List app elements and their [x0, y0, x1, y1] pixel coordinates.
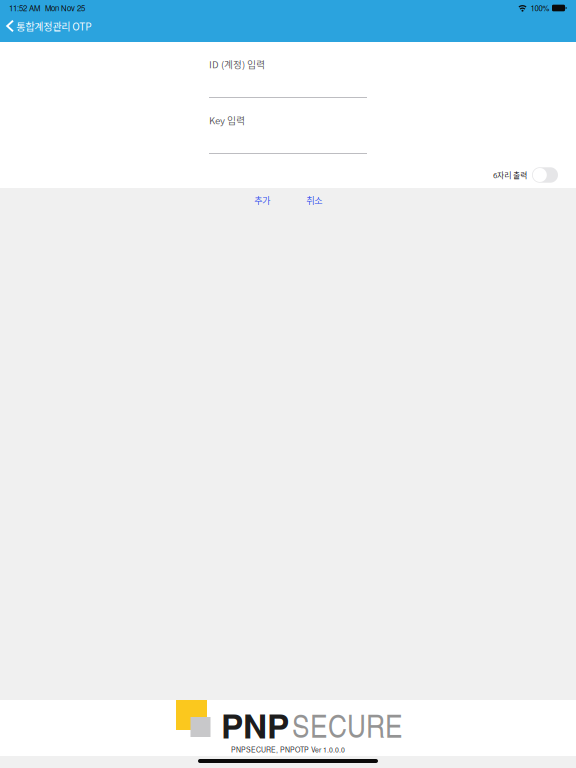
staticText: 취소	[306, 193, 322, 206]
staticText: ID (계정) 입력	[209, 57, 265, 71]
staticText: 11:52 AM	[9, 2, 40, 14]
staticText: SECURE	[292, 703, 403, 747]
staticText: Mon Nov 25	[45, 2, 85, 14]
staticText: PNPSECURE, PNPOTP Ver 1.0.0.0	[231, 744, 345, 754]
staticText: 6자리 출력	[493, 169, 527, 181]
staticText: 통합계정관리 OTP	[16, 19, 91, 33]
button[interactable]: 추가	[244, 191, 280, 209]
staticText: Key 입력	[209, 113, 245, 127]
button[interactable]: 취소	[296, 191, 332, 209]
button[interactable]: 통합계정관리 OTP	[0, 15, 99, 37]
button[interactable]: 6자리 출력	[492, 165, 558, 185]
staticText: PNP	[221, 701, 289, 749]
staticText: 100%	[530, 2, 549, 14]
staticText: 추가	[254, 193, 270, 206]
